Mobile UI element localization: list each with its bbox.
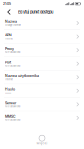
button[interactable]: Nazwa	[0, 16, 84, 30]
staticText: Nie ustawiono	[5, 105, 20, 108]
staticText: ••••••	[5, 91, 11, 94]
button[interactable]: Nazwa użytkownika	[0, 71, 84, 84]
staticText: internet	[5, 37, 13, 40]
button[interactable]: Więcej	[36, 135, 47, 145]
button[interactable]: APN	[0, 30, 84, 43]
staticText: 21:05	[3, 2, 11, 6]
staticText: APN	[5, 33, 12, 37]
button[interactable]: Serwer	[0, 98, 84, 111]
staticText: Nie ustawiono	[5, 64, 20, 67]
button[interactable]: Hasło	[0, 84, 84, 98]
staticText: Nie ustawiono	[5, 118, 20, 121]
button[interactable]: Proxy	[0, 44, 84, 57]
staticText: Proxy	[5, 47, 14, 51]
staticText: Hasło	[5, 87, 15, 91]
staticText: Nazwa użytkownika	[5, 74, 39, 78]
staticText: Port	[5, 60, 11, 64]
staticText: Orange Internet	[5, 24, 21, 27]
staticText: Nie ustawiono	[5, 51, 20, 54]
staticText: Serwer	[5, 101, 16, 105]
button[interactable]: MMSC	[0, 111, 84, 125]
staticText: internet	[5, 78, 13, 81]
staticText: MMSC	[5, 114, 16, 119]
staticText: Edytuj punkt dostępu	[18, 10, 53, 14]
staticText: Nazwa	[5, 19, 17, 24]
button[interactable]: Port	[0, 57, 84, 71]
staticText: Więcej	[36, 142, 47, 145]
button[interactable]: Back	[0, 7, 18, 16]
